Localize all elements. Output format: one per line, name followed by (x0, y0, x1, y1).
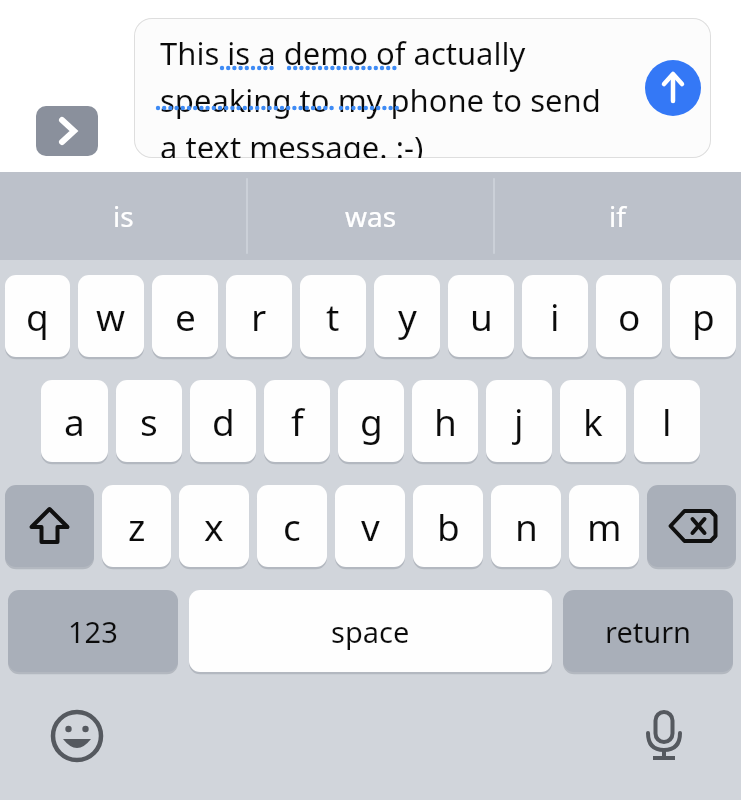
staticText: z (128, 501, 146, 551)
staticText: w (96, 291, 126, 341)
button[interactable]: 123 (8, 590, 178, 672)
staticText: d (212, 396, 235, 446)
button[interactable]: Backspace (647, 485, 736, 567)
staticText: s (140, 396, 158, 446)
staticText: x (204, 501, 224, 551)
button[interactable]: c (257, 485, 327, 567)
button[interactable]: This is a demo of actually (134, 18, 711, 158)
staticText: l (662, 396, 672, 446)
button[interactable]: w (78, 275, 144, 357)
button[interactable]: y (374, 275, 440, 357)
button[interactable]: h (412, 380, 478, 462)
staticText: space (331, 612, 410, 651)
button[interactable]: d (190, 380, 256, 462)
staticText: p (692, 291, 715, 341)
staticText: speaking to my phone to send (160, 79, 601, 121)
staticText: y (398, 291, 417, 341)
button[interactable]: x (179, 485, 249, 567)
staticText: b (437, 501, 460, 551)
staticText: g (360, 396, 383, 446)
staticText: if (609, 197, 626, 235)
button[interactable]: Dictation (633, 705, 695, 767)
button[interactable]: Shift (5, 485, 94, 567)
button[interactable]: if (494, 172, 741, 260)
staticText: was (345, 197, 397, 235)
button[interactable]: q (5, 275, 70, 357)
button[interactable]: m (569, 485, 639, 567)
button[interactable]: z (102, 485, 171, 567)
button[interactable]: n (491, 485, 561, 567)
staticText: return (605, 612, 692, 651)
staticText: v (361, 501, 380, 551)
button[interactable]: f (264, 380, 330, 462)
button[interactable]: k (560, 380, 626, 462)
staticText: n (515, 501, 538, 551)
staticText: j (514, 396, 524, 446)
button[interactable]: Expand (36, 106, 98, 156)
staticText: 123 (68, 612, 118, 651)
button[interactable]: g (338, 380, 404, 462)
button[interactable]: was (247, 172, 494, 260)
staticText: a text message. :-) (160, 126, 424, 158)
button[interactable]: e (152, 275, 218, 357)
staticText: k (583, 396, 603, 446)
staticText: m (587, 501, 622, 551)
button[interactable]: Send (645, 60, 701, 116)
staticText: a (64, 396, 85, 446)
button[interactable]: j (486, 380, 552, 462)
button[interactable]: i (522, 275, 588, 357)
button[interactable]: space (189, 590, 552, 672)
staticText: This is a demo of actually (160, 32, 526, 74)
button[interactable]: is (0, 172, 247, 260)
staticText: h (434, 396, 457, 446)
button[interactable]: r (226, 275, 292, 357)
staticText: e (175, 291, 196, 341)
button[interactable]: s (116, 380, 182, 462)
button[interactable]: return (563, 590, 733, 672)
button[interactable]: Emoji (46, 705, 108, 767)
button[interactable]: t (300, 275, 366, 357)
button[interactable]: p (670, 275, 736, 357)
staticText: f (291, 396, 304, 446)
button[interactable]: u (448, 275, 514, 357)
staticText: t (326, 291, 340, 341)
staticText: q (26, 291, 49, 341)
button[interactable]: v (335, 485, 405, 567)
staticText: i (550, 291, 560, 341)
button[interactable]: a (41, 380, 108, 462)
staticText: u (470, 291, 493, 341)
staticText: is (113, 197, 134, 235)
button[interactable]: l (634, 380, 700, 462)
staticText: o (618, 291, 641, 341)
button[interactable]: b (413, 485, 483, 567)
button[interactable]: o (596, 275, 662, 357)
staticText: r (251, 291, 267, 341)
staticText: c (283, 501, 301, 551)
